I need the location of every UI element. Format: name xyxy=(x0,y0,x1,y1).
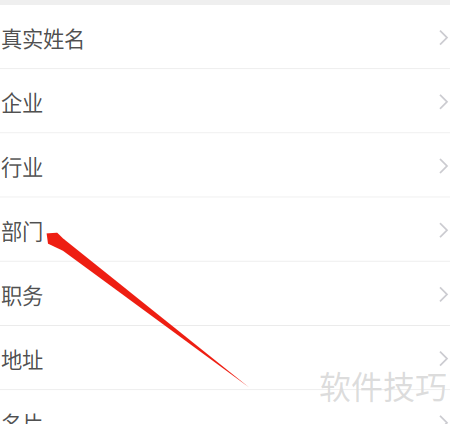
button[interactable]: 名片 xyxy=(0,390,450,424)
staticText: 软件技巧 xyxy=(319,362,447,408)
staticText: 部门 xyxy=(1,215,43,246)
staticText: 名片 xyxy=(1,407,43,424)
button[interactable]: 职务 xyxy=(0,262,450,325)
staticText: 职务 xyxy=(1,279,43,310)
staticText: 行业 xyxy=(1,151,43,181)
button[interactable]: 行业 xyxy=(0,133,450,197)
staticText: 企业 xyxy=(1,86,43,117)
button[interactable]: 真实姓名 xyxy=(0,5,450,68)
button[interactable]: 企业 xyxy=(0,69,450,132)
button[interactable]: 地址 xyxy=(0,326,450,389)
staticText: 真实姓名 xyxy=(1,22,85,53)
staticText: 地址 xyxy=(1,343,43,374)
button[interactable]: 部门 xyxy=(0,198,450,261)
